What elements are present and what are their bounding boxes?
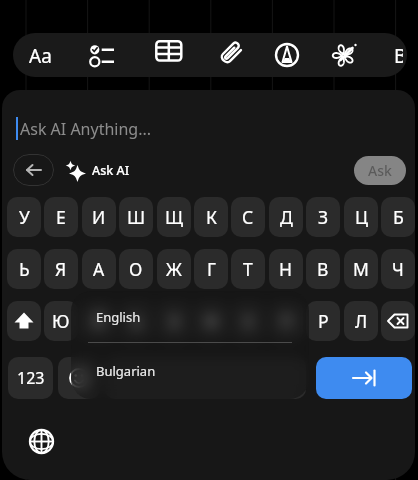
button[interactable]: Enter (316, 357, 412, 399)
button[interactable]: Х (231, 301, 265, 341)
staticText: Э (168, 309, 180, 333)
button[interactable]: К (194, 197, 228, 237)
button[interactable]: Back (13, 154, 54, 186)
button[interactable]: Emoji (58, 357, 100, 399)
button[interactable]: Ш (119, 197, 153, 237)
button[interactable]: Checklist (86, 39, 118, 71)
button[interactable]: З (306, 197, 340, 237)
staticText: Р (318, 309, 329, 333)
button[interactable]: П (269, 301, 303, 341)
button[interactable]: О (119, 249, 153, 289)
button[interactable]: Ю (44, 301, 78, 341)
staticText: Ж (166, 257, 182, 281)
staticText: У (19, 205, 30, 229)
button[interactable]: Aa (24, 43, 56, 67)
staticText: Х (243, 309, 254, 333)
staticText: Ъ (130, 309, 142, 333)
staticText: Б (393, 205, 404, 229)
button[interactable]: Ч (381, 249, 415, 289)
button[interactable]: Щ (157, 197, 191, 237)
button[interactable]: Backspace (381, 301, 415, 341)
button[interactable]: Shift (7, 301, 41, 341)
button[interactable]: Р (306, 301, 340, 341)
staticText: Ф (204, 309, 219, 333)
staticText: Bulgarian (96, 362, 156, 380)
staticText: Ф (204, 309, 219, 333)
staticText: А (93, 257, 105, 281)
staticText: Е (56, 205, 66, 229)
button[interactable]: У (7, 197, 41, 237)
staticText: Ъ (130, 309, 142, 333)
button[interactable]: Ask AI (62, 155, 136, 185)
staticText: В (317, 257, 329, 281)
button[interactable]: Ж (157, 249, 191, 289)
staticText: Ч (392, 257, 404, 281)
staticText: И (92, 205, 106, 229)
staticText: П (280, 309, 293, 333)
button[interactable]: Э (157, 301, 191, 341)
button[interactable]: М (344, 249, 378, 289)
button[interactable]: Ф (194, 301, 228, 341)
staticText: Т (243, 257, 253, 281)
staticText: Х (243, 309, 254, 333)
button[interactable]: Handwriting (271, 39, 303, 71)
button[interactable]: Й (82, 301, 116, 341)
button[interactable]: Ask (354, 156, 406, 185)
button[interactable]: В (306, 249, 340, 289)
button[interactable]: Й (82, 301, 116, 341)
button[interactable]: Ъ (119, 301, 153, 341)
button[interactable]: Ъ (119, 301, 153, 341)
button[interactable]: А (82, 249, 116, 289)
staticText: С (242, 205, 254, 229)
button[interactable]: Э (157, 301, 191, 341)
staticText: Ь (19, 257, 30, 281)
button[interactable]: Space (105, 357, 306, 399)
staticText: О (129, 257, 143, 281)
button[interactable]: Е (44, 197, 78, 237)
staticText: 123 (17, 367, 45, 389)
staticText: Л (355, 309, 368, 333)
button[interactable]: С (231, 197, 265, 237)
staticText: Й (92, 309, 106, 333)
button[interactable]: Я (44, 249, 78, 289)
button[interactable]: Table (153, 39, 185, 71)
staticText: Ю (52, 309, 70, 333)
button[interactable]: Attach (214, 36, 246, 72)
button[interactable]: Ь (7, 249, 41, 289)
staticText: Ш (127, 205, 146, 229)
staticText: П (280, 309, 293, 333)
button[interactable]: Ф (194, 301, 228, 341)
staticText: К (206, 205, 217, 229)
staticText: М (353, 257, 369, 281)
button[interactable]: Change language (28, 428, 55, 455)
button[interactable]: Т (231, 249, 265, 289)
staticText: B (394, 43, 403, 67)
staticText: Ask (368, 161, 392, 180)
button[interactable]: 123 (8, 357, 53, 399)
staticText: Н (279, 257, 293, 281)
staticText: Э (168, 309, 180, 333)
staticText: Щ (165, 205, 183, 229)
staticText: Ц (355, 205, 368, 229)
staticText: Г (207, 257, 216, 281)
button[interactable]: И (82, 197, 116, 237)
staticText: З (318, 205, 329, 229)
staticText: Я (55, 257, 67, 281)
button[interactable]: Emoji (71, 357, 100, 399)
button[interactable]: Б (381, 197, 415, 237)
button[interactable]: Х (231, 301, 265, 341)
button[interactable]: Н (269, 249, 303, 289)
button[interactable]: English (71, 291, 309, 342)
button[interactable]: Д (269, 197, 303, 237)
staticText: Ask AI (92, 162, 130, 179)
button[interactable]: П (269, 301, 303, 341)
button[interactable]: Bulgarian (71, 343, 309, 399)
button[interactable]: Г (194, 249, 228, 289)
button[interactable]: Space (105, 357, 306, 399)
staticText: English (96, 308, 141, 326)
button[interactable]: Л (344, 301, 378, 341)
button[interactable]: AI assist (329, 38, 361, 70)
button[interactable]: Ц (344, 197, 378, 237)
